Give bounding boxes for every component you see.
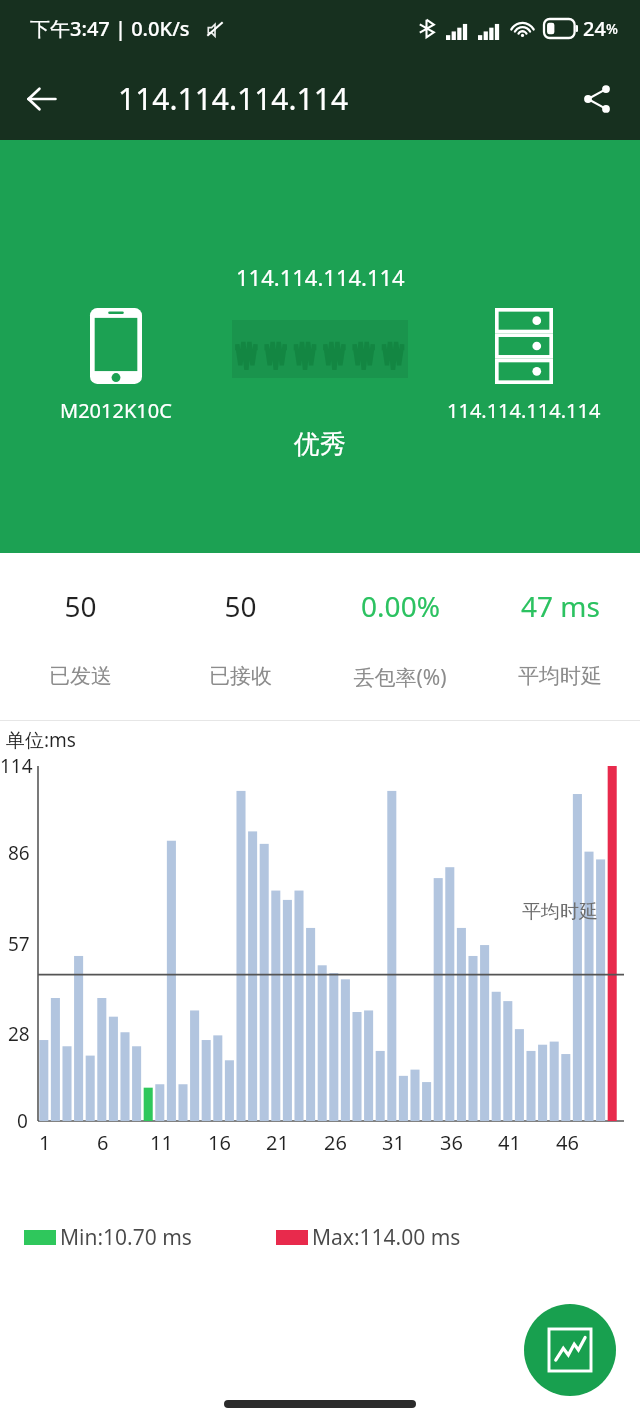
staticText: 50 bbox=[224, 587, 257, 625]
staticText: 26 bbox=[324, 1129, 347, 1156]
button[interactable]: 50 bbox=[160, 553, 320, 720]
staticText: % bbox=[606, 19, 618, 38]
staticText: 114.114.114.114 bbox=[447, 397, 601, 424]
button[interactable]: 47 ms bbox=[480, 553, 640, 720]
staticText: 50 bbox=[64, 587, 97, 625]
button[interactable]: 0.00% bbox=[320, 553, 480, 720]
staticText: 11 bbox=[150, 1129, 173, 1156]
staticText: 24 bbox=[583, 15, 606, 42]
staticText: 47 ms bbox=[521, 587, 600, 625]
staticText: 单位:ms bbox=[6, 727, 76, 753]
staticText: 114.114.114.114 bbox=[236, 262, 405, 292]
button[interactable]: Show chart bbox=[524, 1304, 616, 1396]
staticText: 优秀 bbox=[294, 428, 346, 461]
staticText: Max:114.00 ms bbox=[312, 1223, 461, 1252]
staticText: 114 bbox=[0, 753, 33, 779]
staticText: 31 bbox=[382, 1129, 405, 1156]
staticText: 下午3:47 | 0.0K/s bbox=[30, 15, 190, 42]
staticText: 86 bbox=[8, 840, 30, 866]
staticText: 16 bbox=[208, 1129, 231, 1156]
staticText: 已发送 bbox=[49, 663, 112, 689]
staticText: 已接收 bbox=[209, 663, 272, 689]
staticText: 46 bbox=[556, 1129, 579, 1156]
staticText: 0.00% bbox=[361, 587, 440, 625]
staticText: 57 bbox=[8, 931, 30, 957]
staticText: 21 bbox=[266, 1129, 289, 1156]
staticText: Min:10.70 ms bbox=[60, 1223, 192, 1252]
staticText: 114.114.114.114 bbox=[118, 78, 349, 119]
staticText: 36 bbox=[440, 1129, 463, 1156]
staticText: 28 bbox=[8, 1021, 30, 1047]
staticText: 平均时延 bbox=[518, 663, 602, 689]
button[interactable]: Back bbox=[12, 69, 72, 129]
staticText: 1 bbox=[39, 1129, 51, 1156]
button[interactable]: Share bbox=[568, 70, 626, 128]
staticText: 平均时延 bbox=[522, 900, 598, 924]
staticText: 41 bbox=[498, 1129, 521, 1156]
button[interactable]: 50 bbox=[0, 553, 160, 720]
staticText: 丢包率(%) bbox=[353, 663, 447, 692]
staticText: 6 bbox=[97, 1129, 109, 1156]
button[interactable]: Max:114.00 ms bbox=[276, 1223, 461, 1252]
staticText: 0 bbox=[17, 1108, 28, 1134]
button[interactable]: Min:10.70 ms bbox=[24, 1223, 192, 1252]
staticText: M2012K10C bbox=[60, 397, 172, 424]
